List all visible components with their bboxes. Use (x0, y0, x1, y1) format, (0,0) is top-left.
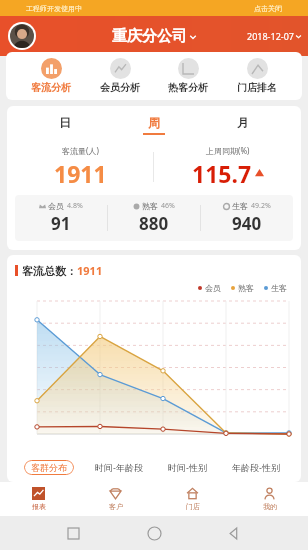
button[interactable]: 时间-年龄段 (91, 458, 147, 476)
staticText: 报表 (32, 502, 46, 511)
button[interactable]: 我的 (231, 487, 308, 511)
other: Home (148, 527, 161, 540)
button[interactable]: 日 (34, 115, 96, 135)
staticText: 4.8% (67, 201, 83, 211)
staticText: 91 (51, 212, 71, 235)
staticText: 日 (59, 115, 71, 130)
staticText: 46% (161, 201, 175, 211)
staticText: 时间-性别 (168, 461, 207, 473)
button[interactable]: 时间-性别 (164, 458, 211, 476)
staticText: 生客 (232, 201, 248, 211)
staticText: 49.2% (251, 201, 271, 211)
button[interactable]: 客户 (77, 487, 154, 511)
staticText: 年龄段-性别 (232, 461, 280, 473)
staticText: 2018-12-07 (247, 30, 294, 42)
button[interactable]: 热客分析 (164, 57, 212, 95)
other: Back (229, 528, 240, 539)
button[interactable]: 门店 (154, 487, 231, 511)
staticText: 1911 (77, 263, 103, 278)
staticText: 1911 (54, 158, 107, 189)
button[interactable]: 门店排名 (233, 57, 281, 95)
staticText: 客流分析 (31, 81, 71, 94)
staticText: 880 (139, 212, 169, 235)
button[interactable]: Profile (10, 24, 34, 48)
staticText: 工程师开发使用中 (26, 4, 82, 13)
button[interactable]: 会员 (15, 201, 107, 235)
button[interactable]: 月 (212, 115, 274, 135)
staticText: 会员分析 (100, 81, 140, 94)
button[interactable]: 工程师开发使用中 (0, 0, 308, 16)
staticText: 客群分布 (31, 462, 67, 473)
button[interactable]: 熟客 (108, 201, 200, 235)
staticText: 月 (237, 115, 249, 130)
button[interactable]: 客群分布 (24, 460, 74, 475)
staticText: 会员 (48, 201, 64, 211)
button[interactable]: 客流分析 (27, 57, 75, 95)
staticText: 热客分析 (168, 81, 208, 94)
staticText: 熟客 (238, 283, 254, 293)
staticText: 我的 (263, 502, 277, 511)
button[interactable]: 周 (123, 115, 185, 135)
staticText: 周 (148, 115, 160, 130)
staticText: 门店 (186, 502, 200, 511)
staticText: 940 (232, 212, 262, 235)
button[interactable]: 会员分析 (96, 57, 144, 95)
staticText: 客流量(人) (62, 145, 99, 156)
staticText: 门店排名 (237, 81, 277, 94)
staticText: 熟客 (142, 201, 158, 211)
staticText: 时间-年龄段 (95, 461, 143, 473)
staticText: 重庆分公司 (112, 27, 187, 46)
button[interactable]: 重庆分公司 (112, 27, 197, 46)
staticText: 115.7 (192, 158, 252, 189)
button[interactable]: 报表 (0, 487, 77, 511)
staticText: 客户 (109, 502, 123, 511)
staticText: 生客 (271, 283, 287, 293)
staticText: 上周同期(%) (206, 145, 250, 156)
other: Recent apps (68, 528, 79, 539)
button[interactable]: 生客 (201, 201, 293, 235)
staticText: 客流总数： (22, 264, 77, 278)
staticText: 点击关闭 (254, 4, 282, 13)
staticText: 会员 (205, 283, 221, 293)
button[interactable]: 年龄段-性别 (228, 458, 284, 476)
button[interactable]: 2018-12-07 (247, 30, 302, 42)
